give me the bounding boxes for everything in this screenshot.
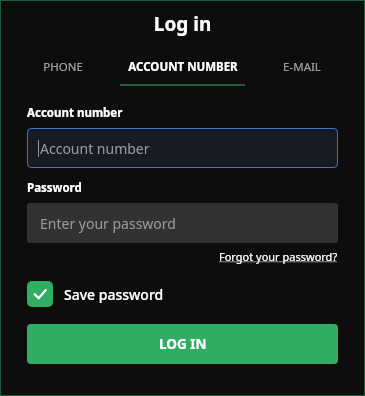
staticText: E-MAIL xyxy=(283,59,321,75)
staticText: ACCOUNT NUMBER xyxy=(128,59,238,75)
staticText: LOG IN xyxy=(159,335,207,353)
button[interactable]: ACCOUNT NUMBER xyxy=(116,59,249,86)
staticText: Forgot your password? xyxy=(219,249,338,264)
button[interactable]: Save password xyxy=(27,281,164,307)
staticText: Password xyxy=(27,180,82,196)
staticText: Account number xyxy=(40,139,150,158)
button[interactable]: E-MAIL xyxy=(249,59,355,86)
staticText: Save password xyxy=(64,285,164,304)
staticText: Account number xyxy=(27,105,123,121)
button[interactable]: Account number xyxy=(27,128,338,168)
button[interactable]: LOG IN xyxy=(27,324,338,364)
button[interactable]: PHONE xyxy=(10,59,116,86)
staticText: Enter your password xyxy=(40,214,176,233)
button[interactable]: Forgot your password? xyxy=(219,249,338,264)
button[interactable]: Enter your password xyxy=(27,203,338,243)
staticText: Log in xyxy=(0,11,365,37)
staticText: PHONE xyxy=(43,59,83,75)
